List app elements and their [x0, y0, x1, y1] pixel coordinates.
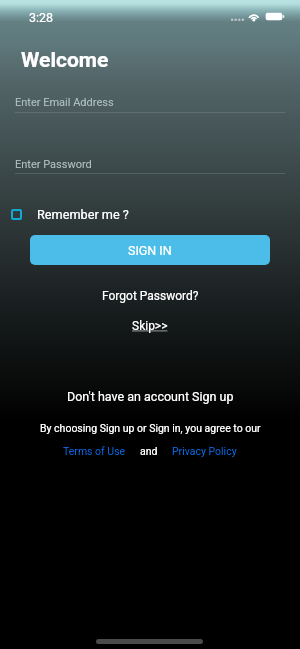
other: Wi-Fi: [248, 11, 260, 22]
button[interactable]: Don't have an account Sign up: [67, 389, 234, 404]
button[interactable]: Remember me ?: [11, 207, 129, 222]
button[interactable]: SIGN IN: [30, 235, 270, 265]
button[interactable]: Forgot Password?: [102, 289, 199, 303]
staticText: Remember me ?: [37, 207, 129, 222]
staticText: By choosing Sign up or Sign in, you agre…: [40, 422, 261, 434]
staticText: 3:28: [29, 10, 54, 25]
staticText: SIGN IN: [128, 243, 172, 258]
staticText: Enter Email Address: [15, 96, 114, 109]
button[interactable]: Skip>>: [132, 319, 168, 333]
staticText: Welcome: [21, 48, 109, 73]
other: Cellular signal: [229, 15, 246, 25]
staticText: and: [140, 445, 158, 457]
button[interactable]: Privacy Policy: [172, 445, 237, 457]
button[interactable]: Terms of Use: [63, 445, 126, 457]
staticText: Enter Password: [15, 158, 92, 171]
other: Battery: [265, 12, 285, 21]
